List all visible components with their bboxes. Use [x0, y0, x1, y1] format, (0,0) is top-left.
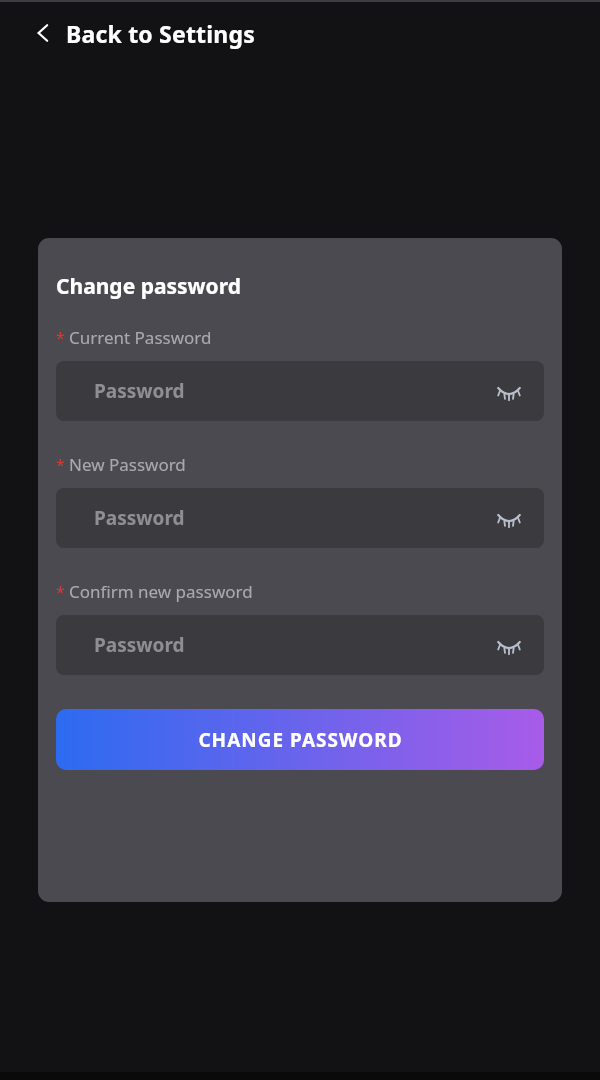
staticText: CHANGE PASSWORD — [198, 727, 403, 753]
button[interactable]: Show password — [492, 501, 526, 535]
staticText: * Current Password — [56, 326, 212, 349]
staticText: Password — [94, 505, 185, 531]
button[interactable]: Show password — [492, 374, 526, 408]
button[interactable]: Password — [56, 615, 544, 675]
staticText: * New Password — [56, 453, 186, 476]
button[interactable]: Password — [56, 361, 544, 421]
button[interactable]: CHANGE PASSWORD — [56, 709, 544, 770]
button[interactable]: Back — [0, 10, 255, 56]
staticText: Back to Settings — [66, 18, 255, 49]
other: Back — [30, 20, 56, 46]
staticText: Change password — [56, 272, 241, 301]
button[interactable]: Password — [56, 488, 544, 548]
staticText: Password — [94, 632, 185, 658]
staticText: Password — [94, 378, 185, 404]
button[interactable]: Show password — [492, 628, 526, 662]
staticText: * Confirm new password — [56, 580, 253, 603]
